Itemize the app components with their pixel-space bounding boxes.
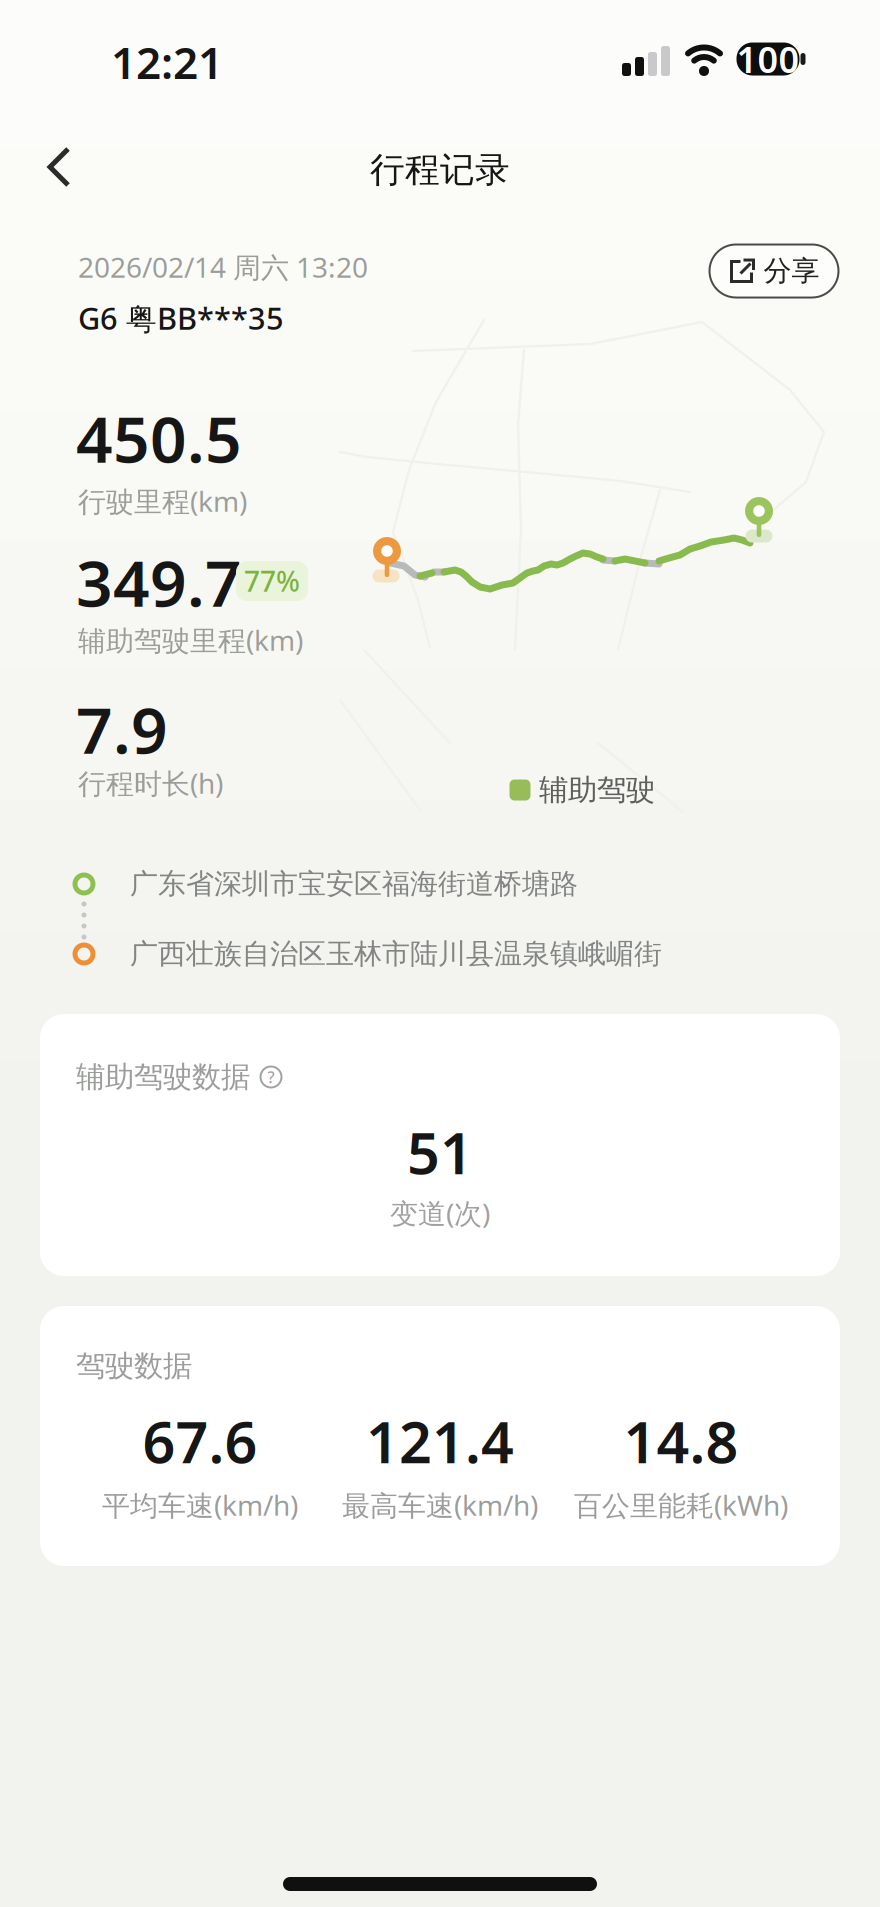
staticText: 辅助驾驶里程(km) [78, 621, 303, 659]
staticText: 349.7 [76, 539, 242, 624]
staticText: 辅助驾驶 [539, 772, 655, 808]
staticText: 百公里能耗(kWh) [574, 1486, 788, 1524]
staticText: ? [267, 1066, 274, 1088]
button[interactable]: 分享 [709, 244, 838, 297]
staticText: 121.4 [366, 1403, 514, 1479]
staticText: 最高车速(km/h) [342, 1486, 538, 1524]
staticText: 平均车速(km/h) [102, 1486, 298, 1524]
staticText: G6 粤BB***35 [78, 298, 284, 338]
button[interactable]: Back [38, 143, 86, 191]
staticText: 行程时长(h) [78, 764, 223, 802]
staticText: 广西壮族自治区玉林市陆川县温泉镇峨嵋街 [130, 937, 662, 971]
staticText: 51 [407, 1114, 473, 1190]
staticText: 77% [244, 562, 300, 600]
staticText: 分享 [763, 254, 819, 288]
staticText: 12:21 [111, 33, 223, 91]
staticText: 2026/02/14 周六 13:20 [78, 248, 368, 286]
staticText: 14.8 [623, 1403, 738, 1479]
staticText: 广东省深圳市宝安区福海街道桥塘路 [130, 867, 578, 901]
staticText: 67.6 [142, 1403, 257, 1479]
staticText: 行驶里程(km) [78, 482, 247, 520]
staticText: 行程记录 [370, 149, 510, 191]
staticText: 450.5 [76, 395, 242, 480]
button[interactable]: 帮助 [260, 1066, 282, 1088]
staticText: 7.9 [76, 686, 168, 771]
staticText: 辅助驾驶数据 [76, 1059, 250, 1095]
staticText: 变道(次) [390, 1194, 490, 1232]
staticText: 驾驶数据 [76, 1348, 192, 1384]
staticText: 100 [736, 35, 799, 83]
